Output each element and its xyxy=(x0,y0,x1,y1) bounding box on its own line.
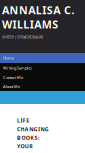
staticText: CHANGING xyxy=(17,126,49,133)
button[interactable]: Writing Samples xyxy=(0,63,85,73)
staticText: LIFE xyxy=(17,117,29,124)
staticText: Contact Me xyxy=(3,75,23,80)
staticText: Home xyxy=(3,55,14,61)
button[interactable]: Contact Me xyxy=(0,73,85,82)
staticText: ANNALISA C. xyxy=(2,3,74,17)
button[interactable]: About Me xyxy=(0,82,85,91)
staticText: WILLIAMS xyxy=(2,17,58,31)
button[interactable]: Home xyxy=(0,53,85,63)
staticText: About Me xyxy=(3,84,20,89)
staticText: BOOKS: xyxy=(17,134,39,141)
staticText: Writing Samples xyxy=(3,65,32,71)
staticText: WRITER | EXTRAORDINAIRE xyxy=(2,34,43,40)
staticText: YOUR xyxy=(17,143,32,150)
